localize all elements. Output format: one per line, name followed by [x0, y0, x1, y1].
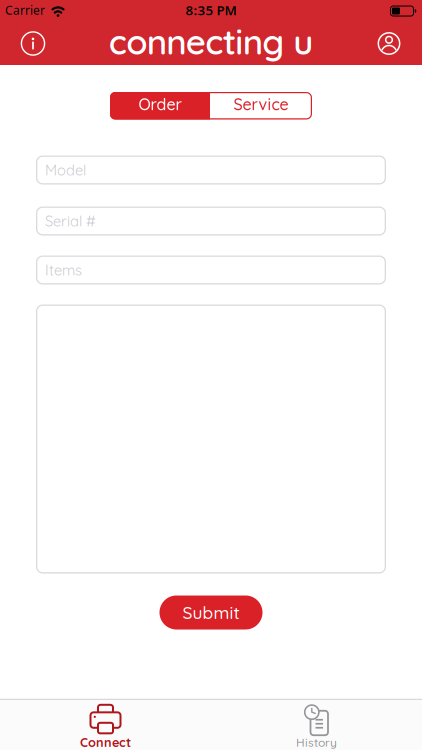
button[interactable]: Service: [210, 92, 312, 119]
staticText: Order: [138, 94, 181, 114]
staticText: Model: [45, 161, 86, 179]
staticText: Service: [233, 94, 288, 114]
staticText: 8:35 PM: [185, 1, 236, 19]
staticText: Carrier: [5, 2, 45, 18]
staticText: Connect: [80, 734, 131, 750]
button[interactable]: History: [211, 700, 422, 750]
staticText: History: [296, 735, 337, 750]
button[interactable]: Info: [0, 30, 46, 56]
staticText: connecting u: [109, 20, 313, 63]
button[interactable]: Connect: [0, 700, 211, 750]
staticText: Serial #: [45, 212, 96, 230]
button[interactable]: Submit: [159, 595, 262, 629]
staticText: Submit: [182, 602, 239, 623]
button[interactable]: Order: [110, 92, 210, 119]
button[interactable]: Profile: [377, 31, 422, 55]
staticText: Items: [45, 261, 82, 279]
